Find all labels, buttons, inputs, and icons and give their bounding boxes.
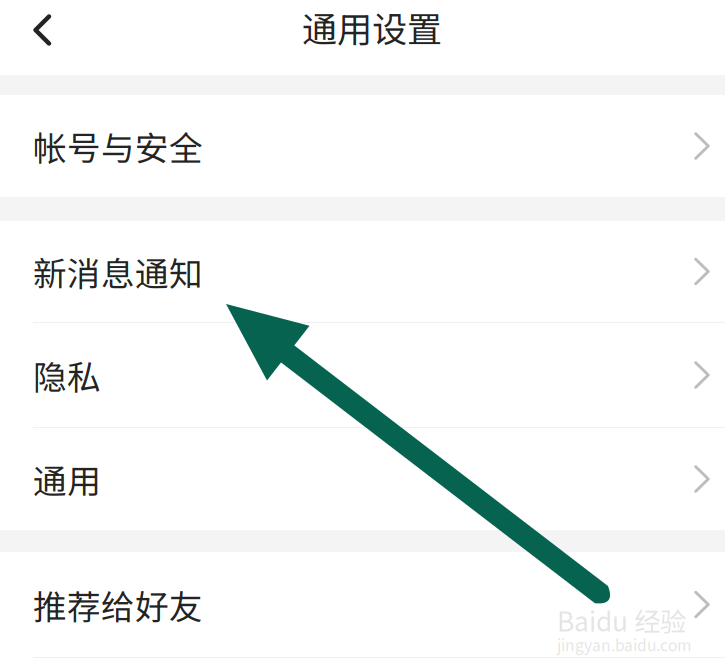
- button[interactable]: Back: [11, 2, 73, 58]
- button[interactable]: 帐号与安全: [0, 95, 725, 197]
- staticText: 通用设置: [302, 2, 442, 52]
- staticText: 新消息通知: [33, 247, 203, 296]
- button[interactable]: 推荐给好友: [0, 552, 725, 658]
- staticText: Baidu 经验: [557, 601, 686, 639]
- button[interactable]: 通用: [0, 428, 725, 530]
- staticText: 帐号与安全: [33, 122, 203, 170]
- staticText: 推荐给好友: [33, 580, 203, 629]
- staticText: 通用: [33, 455, 101, 503]
- staticText: jingyan.baidu.com: [557, 633, 691, 656]
- button[interactable]: 隐私: [0, 323, 725, 428]
- button[interactable]: 新消息通知: [0, 221, 725, 323]
- staticText: 隐私: [33, 351, 101, 399]
